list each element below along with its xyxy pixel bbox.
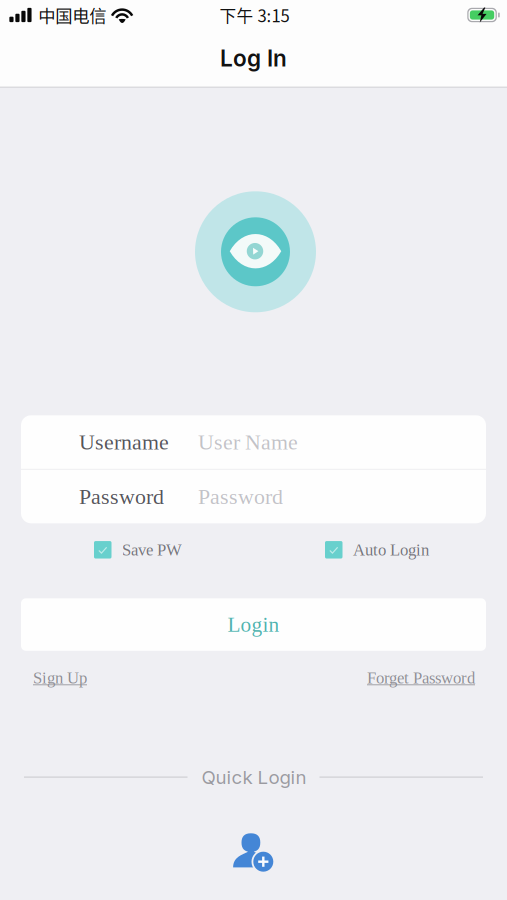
button[interactable]: Auto Login [325,541,429,559]
button[interactable]: Forget Password [367,669,475,687]
button[interactable]: Login [21,598,486,651]
staticText: Save PW [122,541,182,559]
staticText: Login [227,613,279,636]
button[interactable]: Save PW [94,541,182,559]
staticText: Log In [220,45,287,72]
staticText: Quick Login [201,766,306,788]
staticText: Auto Login [353,541,429,559]
staticText: Sign Up [33,669,87,687]
staticText: 中国电信 [38,2,106,28]
staticText: 下午 3:15 [219,3,289,27]
staticText: Username [79,430,169,454]
staticText: Password [79,484,164,509]
staticText: Password [198,484,283,509]
staticText: User Name [198,430,298,454]
button[interactable]: Sign Up [33,669,87,687]
staticText: Forget Password [367,669,475,687]
button[interactable]: Quick login [232,826,274,870]
